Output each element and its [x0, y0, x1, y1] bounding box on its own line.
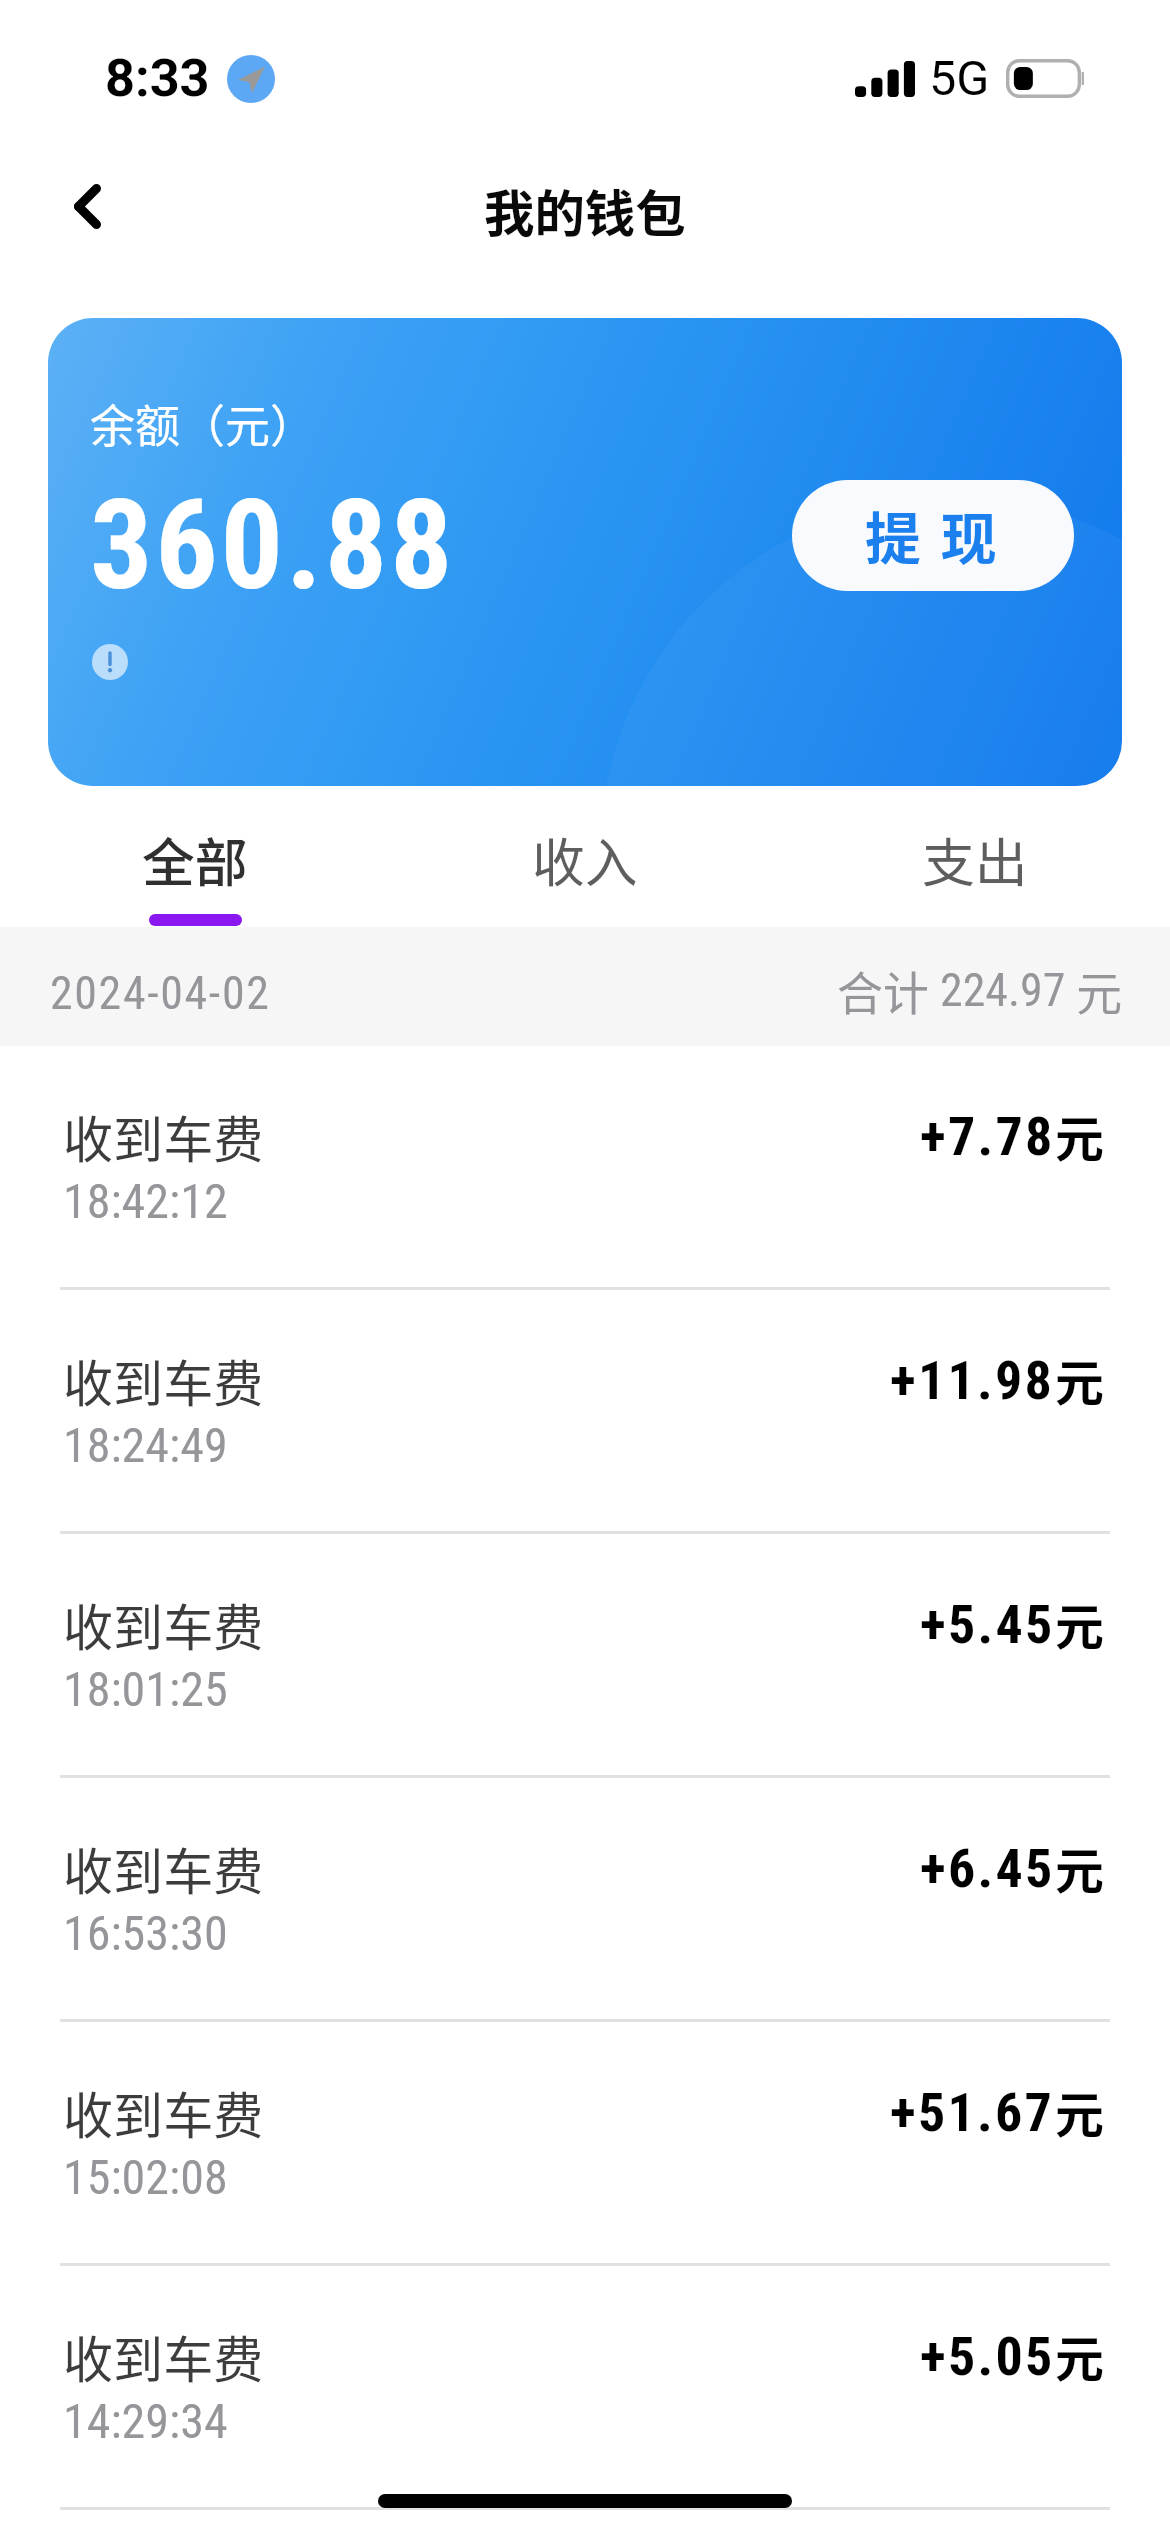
staticText: 全部	[142, 821, 248, 897]
staticText: 18:01:25	[63, 1661, 228, 1717]
staticText: 合计	[837, 957, 940, 1023]
staticText: 支出	[922, 821, 1028, 897]
button[interactable]: 收到车费	[0, 1778, 1170, 2022]
staticText: 224.97	[940, 963, 1066, 1017]
staticText: 收到车费	[63, 2076, 264, 2149]
button[interactable]: 收到车费	[0, 1046, 1170, 1290]
staticText: 15:02:08	[63, 2149, 228, 2205]
staticText: 余额（元）	[90, 391, 316, 456]
staticText: 16:53:30	[63, 1905, 228, 1961]
button[interactable]: 支出	[780, 786, 1170, 927]
button[interactable]: Back	[21, 140, 153, 272]
staticText: 元	[1066, 957, 1123, 1023]
staticText: 360.88	[90, 473, 456, 618]
button[interactable]: 收入	[390, 786, 780, 927]
staticText: 元	[1055, 1344, 1104, 1415]
button[interactable]: 全部	[0, 786, 390, 927]
staticText: 元	[1055, 2076, 1104, 2147]
staticText: 18:42:12	[63, 1173, 228, 1229]
staticText: +7.78	[920, 1105, 1055, 1168]
staticText: 元	[1055, 1832, 1104, 1903]
button[interactable]: 收到车费	[0, 1290, 1170, 1534]
staticText: 元	[1055, 2320, 1104, 2391]
staticText: 收到车费	[63, 1100, 264, 1173]
staticText: +11.98	[890, 1349, 1055, 1412]
staticText: 收入	[532, 821, 638, 897]
button[interactable]: 收到车费	[0, 1534, 1170, 1778]
staticText: 我的钱包	[484, 174, 686, 247]
staticText: 元	[1055, 1100, 1104, 1171]
staticText: 8:33	[105, 48, 210, 109]
staticText: 2024-04-02	[50, 966, 271, 1020]
staticText: 收到车费	[63, 2320, 264, 2393]
staticText: 14:29:34	[63, 2393, 228, 2449]
staticText: 收到车费	[63, 1832, 264, 1905]
staticText: +5.45	[920, 1593, 1055, 1656]
staticText: +5.05	[920, 2325, 1055, 2388]
staticText: 元	[1055, 1588, 1104, 1659]
staticText: 提 现	[865, 494, 1001, 575]
button[interactable]: 收到车费	[0, 2266, 1170, 2510]
staticText: +6.45	[920, 1837, 1055, 1900]
staticText: 收到车费	[63, 1588, 264, 1661]
button[interactable]: 提 现	[792, 480, 1074, 591]
staticText: 收到车费	[63, 1344, 264, 1417]
button[interactable]: 收到车费	[0, 2022, 1170, 2266]
staticText: 18:24:49	[63, 1417, 228, 1473]
staticText: 5G	[929, 50, 990, 107]
staticText: +51.67	[890, 2081, 1055, 2144]
